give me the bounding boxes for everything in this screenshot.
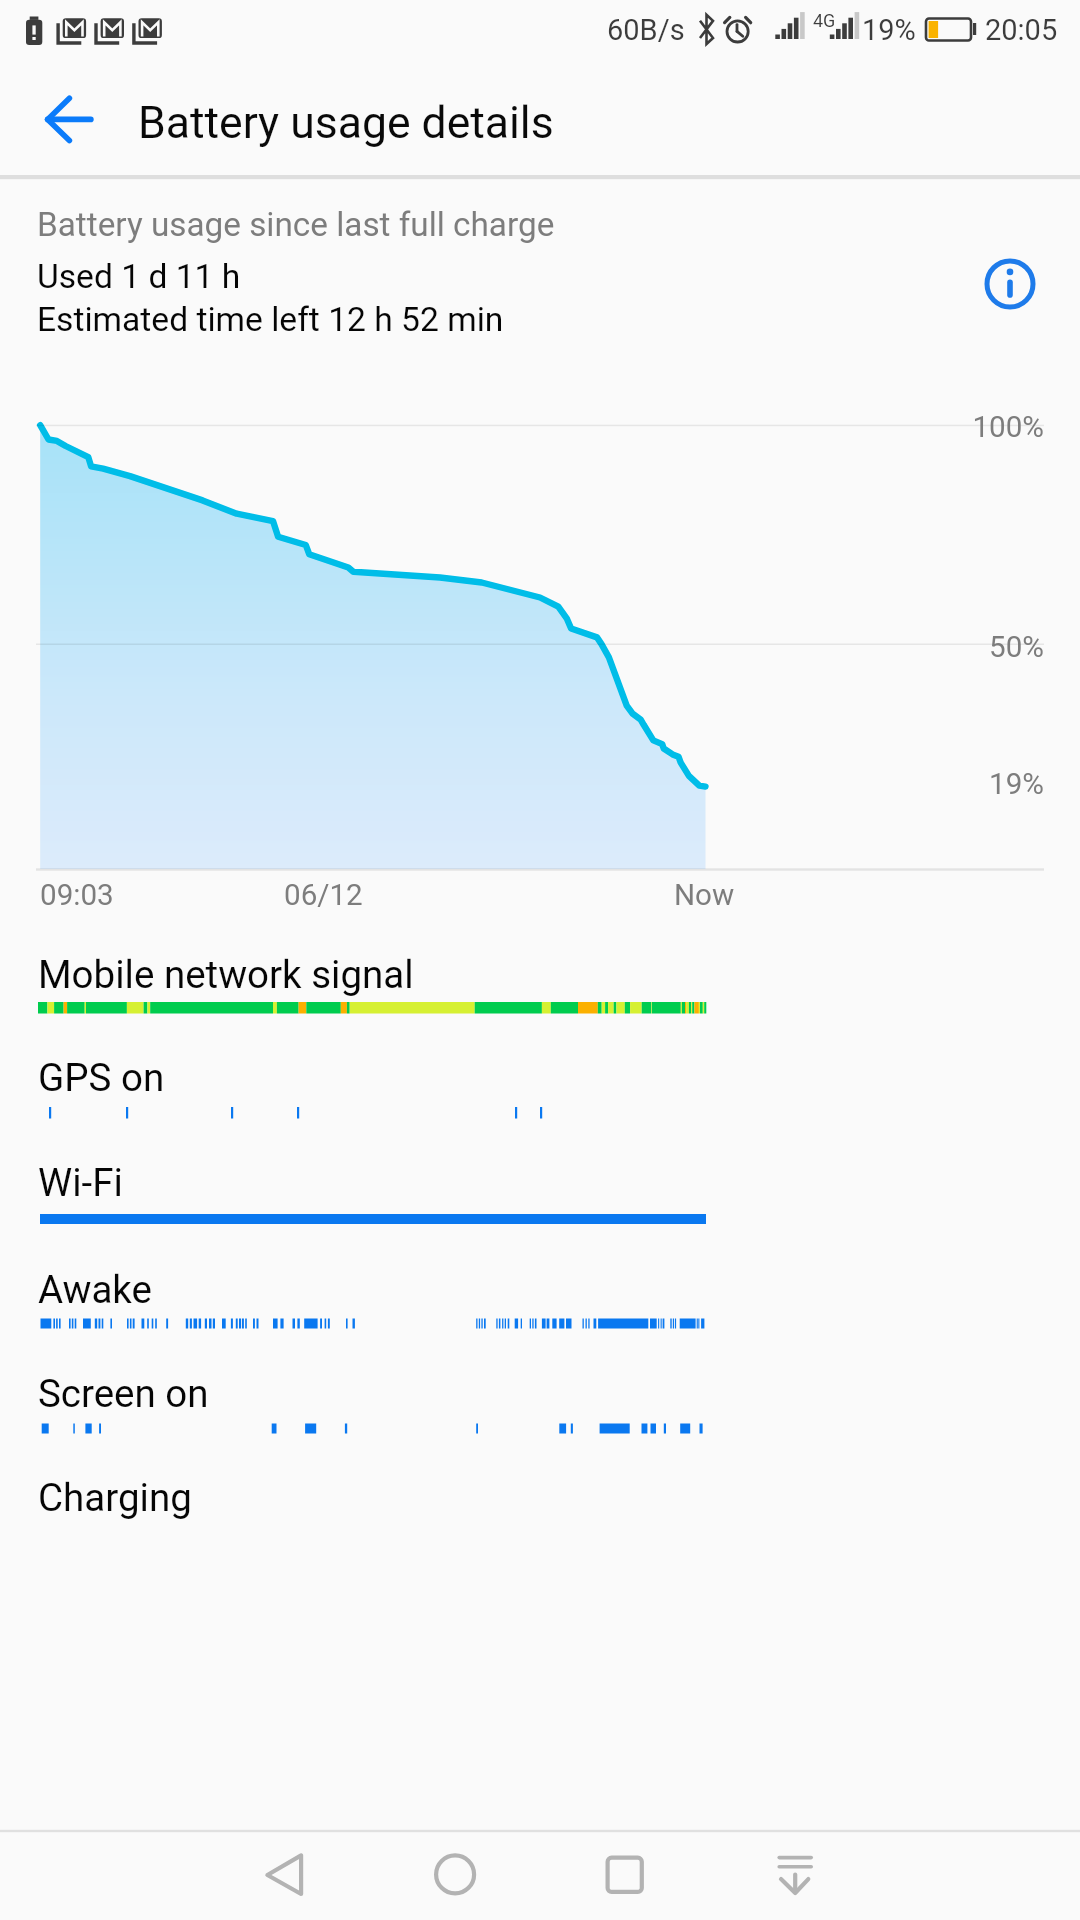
button[interactable]: Recent apps [533, 1832, 705, 1920]
staticText: Estimated time left 12 h 52 min [37, 300, 504, 339]
button[interactable]: Back [190, 1832, 362, 1920]
staticText: Wi-Fi [38, 1160, 123, 1205]
staticText: 60B/s [607, 13, 685, 47]
staticText: Battery usage since last full charge [37, 205, 555, 244]
staticText: GPS on [38, 1055, 165, 1100]
staticText: 20:05 [985, 13, 1058, 47]
staticText: 19% [862, 13, 916, 47]
staticText: Screen on [38, 1371, 209, 1416]
staticText: 09:03 [40, 878, 114, 913]
staticText: Battery usage details [138, 97, 554, 149]
button[interactable]: Navigate up [18, 66, 126, 174]
button[interactable]: Battery usage information [970, 244, 1050, 324]
staticText: Charging [38, 1475, 192, 1520]
staticText: 19% [989, 767, 1044, 802]
staticText: 4G [813, 10, 836, 31]
button[interactable]: Home [363, 1832, 535, 1920]
staticText: 06/12 [284, 878, 363, 913]
staticText: 50% [989, 630, 1044, 665]
staticText: Mobile network signal [38, 952, 414, 997]
staticText: Awake [38, 1267, 152, 1312]
staticText: 100% [972, 410, 1044, 445]
button[interactable]: Hide navigation bar [703, 1832, 875, 1920]
staticText: Used 1 d 11 h [37, 257, 241, 296]
staticText: Now [674, 878, 735, 913]
